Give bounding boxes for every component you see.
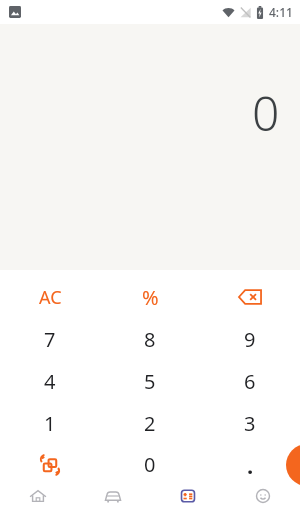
button[interactable]: Home: [0, 485, 75, 507]
staticText: 2: [144, 410, 156, 437]
staticText: .: [247, 450, 254, 480]
staticText: 3: [244, 410, 256, 437]
button[interactable]: Backspace: [200, 276, 300, 318]
staticText: 4: [44, 368, 56, 395]
staticText: 0: [252, 80, 280, 145]
button[interactable]: 9: [200, 318, 300, 360]
button[interactable]: .: [200, 444, 300, 485]
button[interactable]: 8: [100, 318, 200, 360]
button[interactable]: 2: [100, 402, 200, 444]
button[interactable]: Unit converter: [0, 444, 100, 485]
button[interactable]: 6: [200, 360, 300, 402]
staticText: 6: [244, 368, 256, 395]
button[interactable]: 4: [0, 360, 100, 402]
staticText: AC: [39, 285, 62, 310]
staticText: 1: [44, 410, 56, 437]
staticText: 9: [244, 326, 256, 353]
button[interactable]: AC: [0, 276, 100, 318]
staticText: 5: [144, 368, 156, 395]
button[interactable]: 3: [200, 402, 300, 444]
button[interactable]: 5: [100, 360, 200, 402]
button[interactable]: 1: [0, 402, 100, 444]
staticText: 4:11: [269, 4, 293, 20]
button[interactable]: Profile: [225, 485, 300, 507]
button[interactable]: %: [100, 276, 200, 318]
button[interactable]: Equals: [286, 444, 300, 486]
button[interactable]: Vehicle: [75, 485, 150, 507]
button[interactable]: 0: [100, 444, 200, 485]
staticText: 8: [144, 326, 156, 353]
staticText: 0: [144, 451, 156, 478]
button[interactable]: Calculator: [150, 485, 225, 507]
staticText: %: [142, 284, 159, 311]
button[interactable]: 7: [0, 318, 100, 360]
staticText: 7: [44, 326, 56, 353]
